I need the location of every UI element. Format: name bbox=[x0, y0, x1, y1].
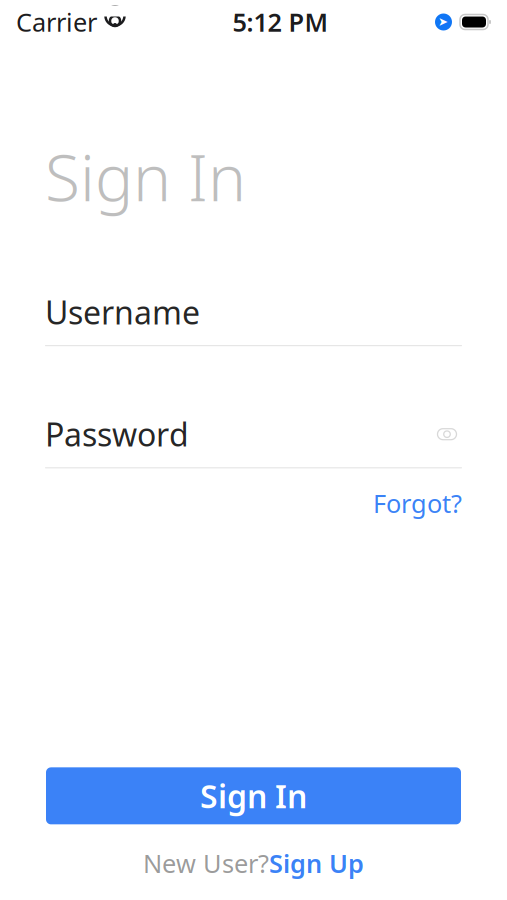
staticText: New User? bbox=[143, 846, 269, 880]
button[interactable]: Show password bbox=[432, 421, 462, 447]
staticText: Forgot? bbox=[373, 486, 462, 520]
staticText: Carrier bbox=[16, 5, 97, 39]
staticText: Username bbox=[45, 291, 200, 333]
staticText: Sign In bbox=[45, 134, 246, 219]
button[interactable]: Sign In bbox=[46, 767, 461, 824]
button[interactable]: Forgot? bbox=[373, 486, 462, 520]
staticText: 5:12 PM bbox=[232, 5, 328, 39]
staticText: Sign Up bbox=[269, 846, 364, 880]
staticText: ➤ bbox=[438, 15, 448, 28]
staticText: Sign In bbox=[200, 775, 307, 817]
staticText: Password bbox=[45, 413, 189, 455]
button[interactable]: New User? bbox=[143, 846, 364, 880]
